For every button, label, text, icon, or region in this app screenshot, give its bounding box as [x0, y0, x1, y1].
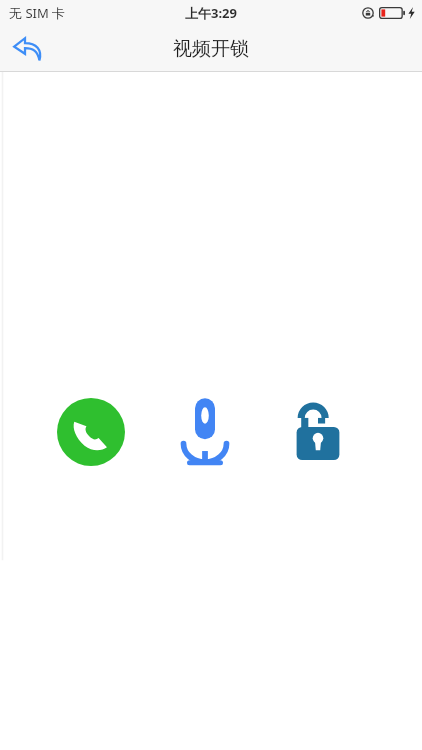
button[interactable]: 开锁 [280, 394, 356, 470]
button[interactable]: 接听 [53, 394, 129, 470]
staticText: 上午3:29 [185, 4, 237, 22]
button[interactable]: 返回 [4, 26, 52, 71]
staticText: 无 SIM 卡 [9, 4, 66, 22]
button[interactable]: 麦克风 [167, 394, 243, 470]
staticText: 视频开锁 [173, 37, 249, 61]
